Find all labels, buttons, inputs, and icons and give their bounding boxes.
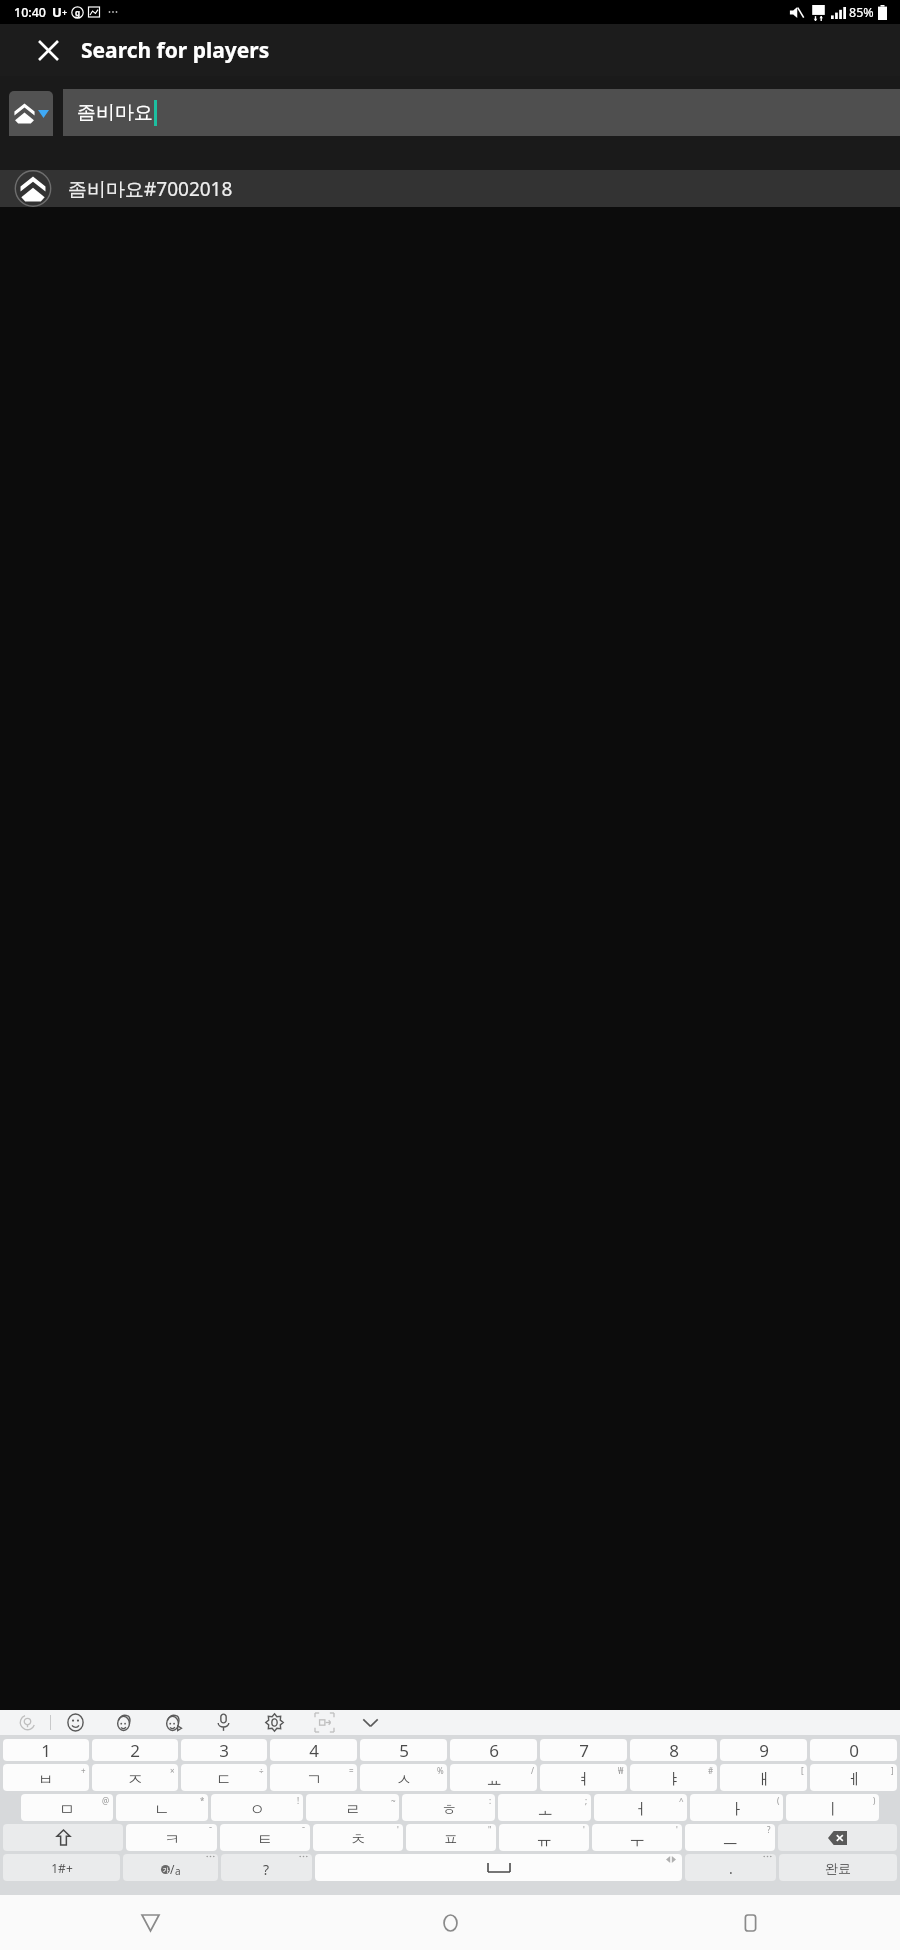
staticText: ㅐ (756, 1770, 772, 1790)
button[interactable]: ^ (594, 1794, 687, 1821)
staticText: : (489, 1795, 492, 1806)
button[interactable]: 8 (630, 1739, 717, 1761)
button[interactable]: [ (720, 1764, 807, 1791)
button[interactable]: = (270, 1764, 357, 1791)
button[interactable]: ( (690, 1794, 783, 1821)
button[interactable]: / (450, 1764, 537, 1791)
button[interactable]: Change language (123, 1854, 218, 1881)
staticText: ㅕ (576, 1770, 592, 1790)
staticText: 0 (849, 1739, 859, 1761)
button[interactable]: Keyboard settings (261, 1710, 287, 1735)
staticText: ; (585, 1795, 588, 1806)
staticText: × (170, 1765, 175, 1776)
button[interactable]: 4 (270, 1739, 357, 1761)
button[interactable]: Translate (14, 1710, 40, 1735)
staticText: 1 (41, 1739, 51, 1761)
staticText: 85% (849, 4, 874, 21)
button[interactable]: Stickers (111, 1710, 137, 1735)
staticText: ㅓ (633, 1800, 649, 1820)
button[interactable]: 1#+ (3, 1854, 120, 1881)
button[interactable]: ~ (306, 1794, 399, 1821)
button[interactable]: 좀비마요#7002018 (0, 170, 900, 207)
staticText: 9 (759, 1739, 769, 1761)
staticText: 7 (579, 1739, 589, 1761)
button[interactable]: : (402, 1794, 495, 1821)
button[interactable]: Back (0, 1895, 300, 1950)
button[interactable]: Extract text (311, 1710, 337, 1735)
staticText: % (437, 1765, 444, 1776)
button[interactable]: Home (300, 1895, 600, 1950)
staticText: # (708, 1765, 714, 1776)
button[interactable]: 0 (810, 1739, 897, 1761)
button[interactable]: 3 (181, 1739, 267, 1761)
button[interactable]: Close (33, 35, 63, 65)
button[interactable]: " (406, 1824, 496, 1851)
button[interactable]: ₩ (540, 1764, 627, 1791)
staticText: + (62, 6, 68, 18)
staticText: ㅍ (443, 1830, 459, 1850)
staticText: g (75, 7, 81, 18)
staticText: @ (102, 1795, 110, 1806)
staticText: ) (873, 1795, 876, 1806)
button[interactable]: ] (810, 1764, 897, 1791)
button[interactable]: % (360, 1764, 447, 1791)
staticText: ㅜ (629, 1830, 645, 1850)
button[interactable]: 2 (92, 1739, 178, 1761)
staticText: ( (777, 1795, 780, 1806)
button[interactable]: ? (221, 1854, 312, 1881)
button[interactable]: ! (211, 1794, 303, 1821)
staticText: ㅔ (846, 1770, 862, 1790)
button[interactable]: 완료 (779, 1854, 897, 1881)
staticText: / (170, 1861, 175, 1877)
button[interactable]: 좀비마요 (63, 89, 900, 136)
button[interactable]: Backspace (778, 1824, 897, 1851)
button[interactable]: ' (499, 1824, 589, 1851)
button[interactable]: 7 (540, 1739, 627, 1761)
staticText: ㅎ (441, 1800, 457, 1820)
staticText: ? (263, 1860, 270, 1879)
button[interactable]: Hide keyboard (357, 1710, 383, 1735)
button[interactable]: ÷ (181, 1764, 267, 1791)
button[interactable]: 9 (720, 1739, 807, 1761)
button[interactable]: ; (498, 1794, 591, 1821)
button[interactable]: + (3, 1764, 89, 1791)
staticText: U (52, 3, 62, 21)
button[interactable]: ' (592, 1824, 682, 1851)
button[interactable]: 6 (450, 1739, 537, 1761)
staticText: [ (801, 1765, 804, 1776)
staticText: ˉ (302, 1824, 306, 1835)
button[interactable]: # (630, 1764, 717, 1791)
staticText: ㅁ (59, 1800, 75, 1820)
button[interactable]: ˉ (126, 1824, 217, 1851)
button[interactable]: ) (786, 1794, 879, 1821)
button[interactable]: ' (313, 1824, 403, 1851)
button[interactable]: Space (315, 1854, 682, 1881)
staticText: Search for players (81, 36, 270, 65)
button[interactable]: Voice input (210, 1710, 236, 1735)
button[interactable]: @ (21, 1794, 113, 1821)
button[interactable]: 1 (3, 1739, 89, 1761)
button[interactable]: Emoji (62, 1710, 88, 1735)
button[interactable]: Animated emoji (160, 1710, 186, 1735)
button[interactable]: ˉ (220, 1824, 310, 1851)
staticText: 가 (163, 1866, 169, 1874)
button[interactable]: × (92, 1764, 178, 1791)
staticText: ÷ (259, 1765, 264, 1776)
staticText: 좀비마요 (77, 101, 153, 125)
staticText: ' (583, 1824, 585, 1835)
button[interactable]: Shift (3, 1824, 123, 1851)
button[interactable]: Select platform (9, 91, 53, 136)
button[interactable]: ? (685, 1824, 775, 1851)
button[interactable]: * (116, 1794, 208, 1821)
button[interactable]: . (685, 1854, 776, 1881)
button[interactable]: 5 (360, 1739, 447, 1761)
staticText: ? (767, 1824, 771, 1835)
staticText: ㅛ (486, 1770, 502, 1790)
staticText: ㅂ (38, 1770, 54, 1790)
staticText: = (349, 1765, 354, 1776)
staticText: 3 (219, 1739, 229, 1761)
button[interactable]: Recents (600, 1895, 900, 1950)
staticText: ' (397, 1824, 399, 1835)
staticText: ˉ (209, 1824, 213, 1835)
staticText: ㅠ (536, 1830, 552, 1850)
